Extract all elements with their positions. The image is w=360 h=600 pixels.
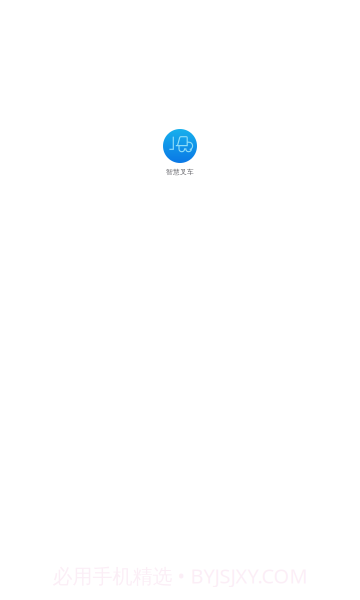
staticText: 必用手机精选 • BYJSJXY.COM: [52, 562, 307, 589]
staticText: 智慧叉车: [166, 168, 194, 176]
button[interactable]: 智慧叉车: [152, 129, 208, 176]
